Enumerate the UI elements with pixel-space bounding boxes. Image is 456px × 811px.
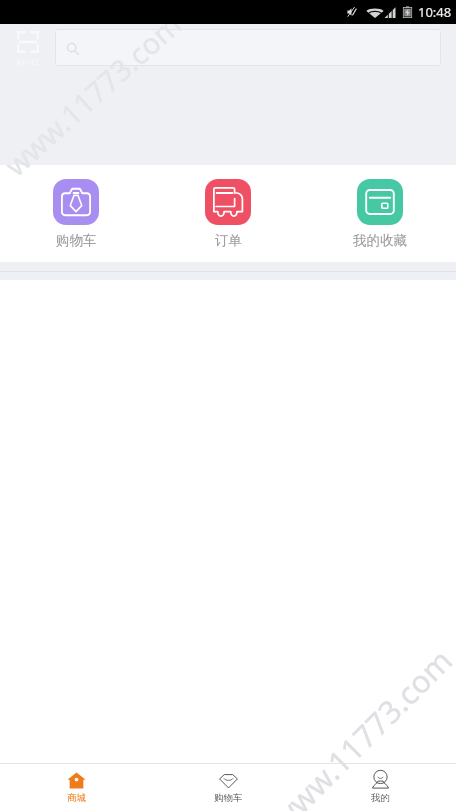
- staticText: www.11773.com: [0, 24, 189, 184]
- button[interactable]: 我的: [304, 764, 456, 811]
- button[interactable]: 订单: [152, 165, 304, 262]
- staticText: 购物车: [56, 232, 97, 249]
- button[interactable]: 我的收藏: [304, 165, 456, 262]
- staticText: 我的收藏: [353, 232, 407, 249]
- staticText: 10:48: [418, 3, 452, 21]
- button[interactable]: 购物车: [0, 165, 152, 262]
- staticText: 我的: [371, 792, 390, 804]
- staticText: 订单: [215, 232, 242, 249]
- staticText: 购物车: [214, 792, 243, 804]
- button[interactable]: 购物车: [152, 764, 304, 811]
- button[interactable]: 商城: [0, 764, 152, 811]
- button[interactable]: 搜索: [55, 29, 441, 66]
- staticText: 商城: [67, 792, 86, 804]
- staticText: www.11773.com: [261, 640, 456, 811]
